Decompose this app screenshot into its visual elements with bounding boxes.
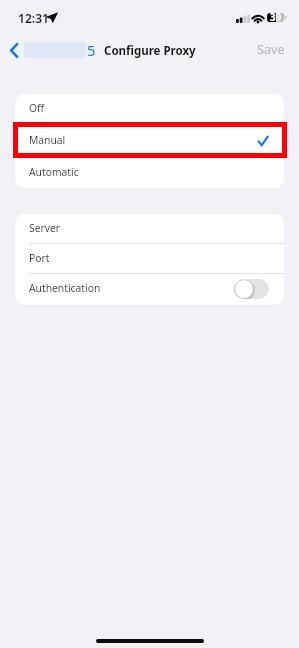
- button[interactable]: Port: [15, 243, 284, 273]
- staticText: Save: [257, 41, 285, 58]
- button[interactable]: Back: [4, 38, 100, 62]
- staticText: 39: [270, 11, 282, 24]
- button[interactable]: Authentication toggle: [234, 279, 269, 299]
- button[interactable]: Save: [247, 38, 299, 61]
- staticText: Server: [29, 221, 61, 235]
- staticText: 5: [87, 40, 96, 60]
- button[interactable]: Manual: [15, 123, 284, 159]
- button[interactable]: Authentication: [15, 273, 284, 305]
- button[interactable]: Server: [15, 214, 284, 243]
- button[interactable]: Off: [15, 94, 284, 123]
- button[interactable]: Automatic: [15, 159, 284, 188]
- staticText: Configure Proxy: [104, 43, 196, 59]
- staticText: 12:31: [18, 10, 50, 26]
- staticText: Manual: [29, 133, 66, 147]
- staticText: Port: [29, 251, 50, 265]
- staticText: Automatic: [29, 165, 79, 179]
- staticText: Authentication: [29, 281, 101, 295]
- staticText: Off: [29, 101, 45, 115]
